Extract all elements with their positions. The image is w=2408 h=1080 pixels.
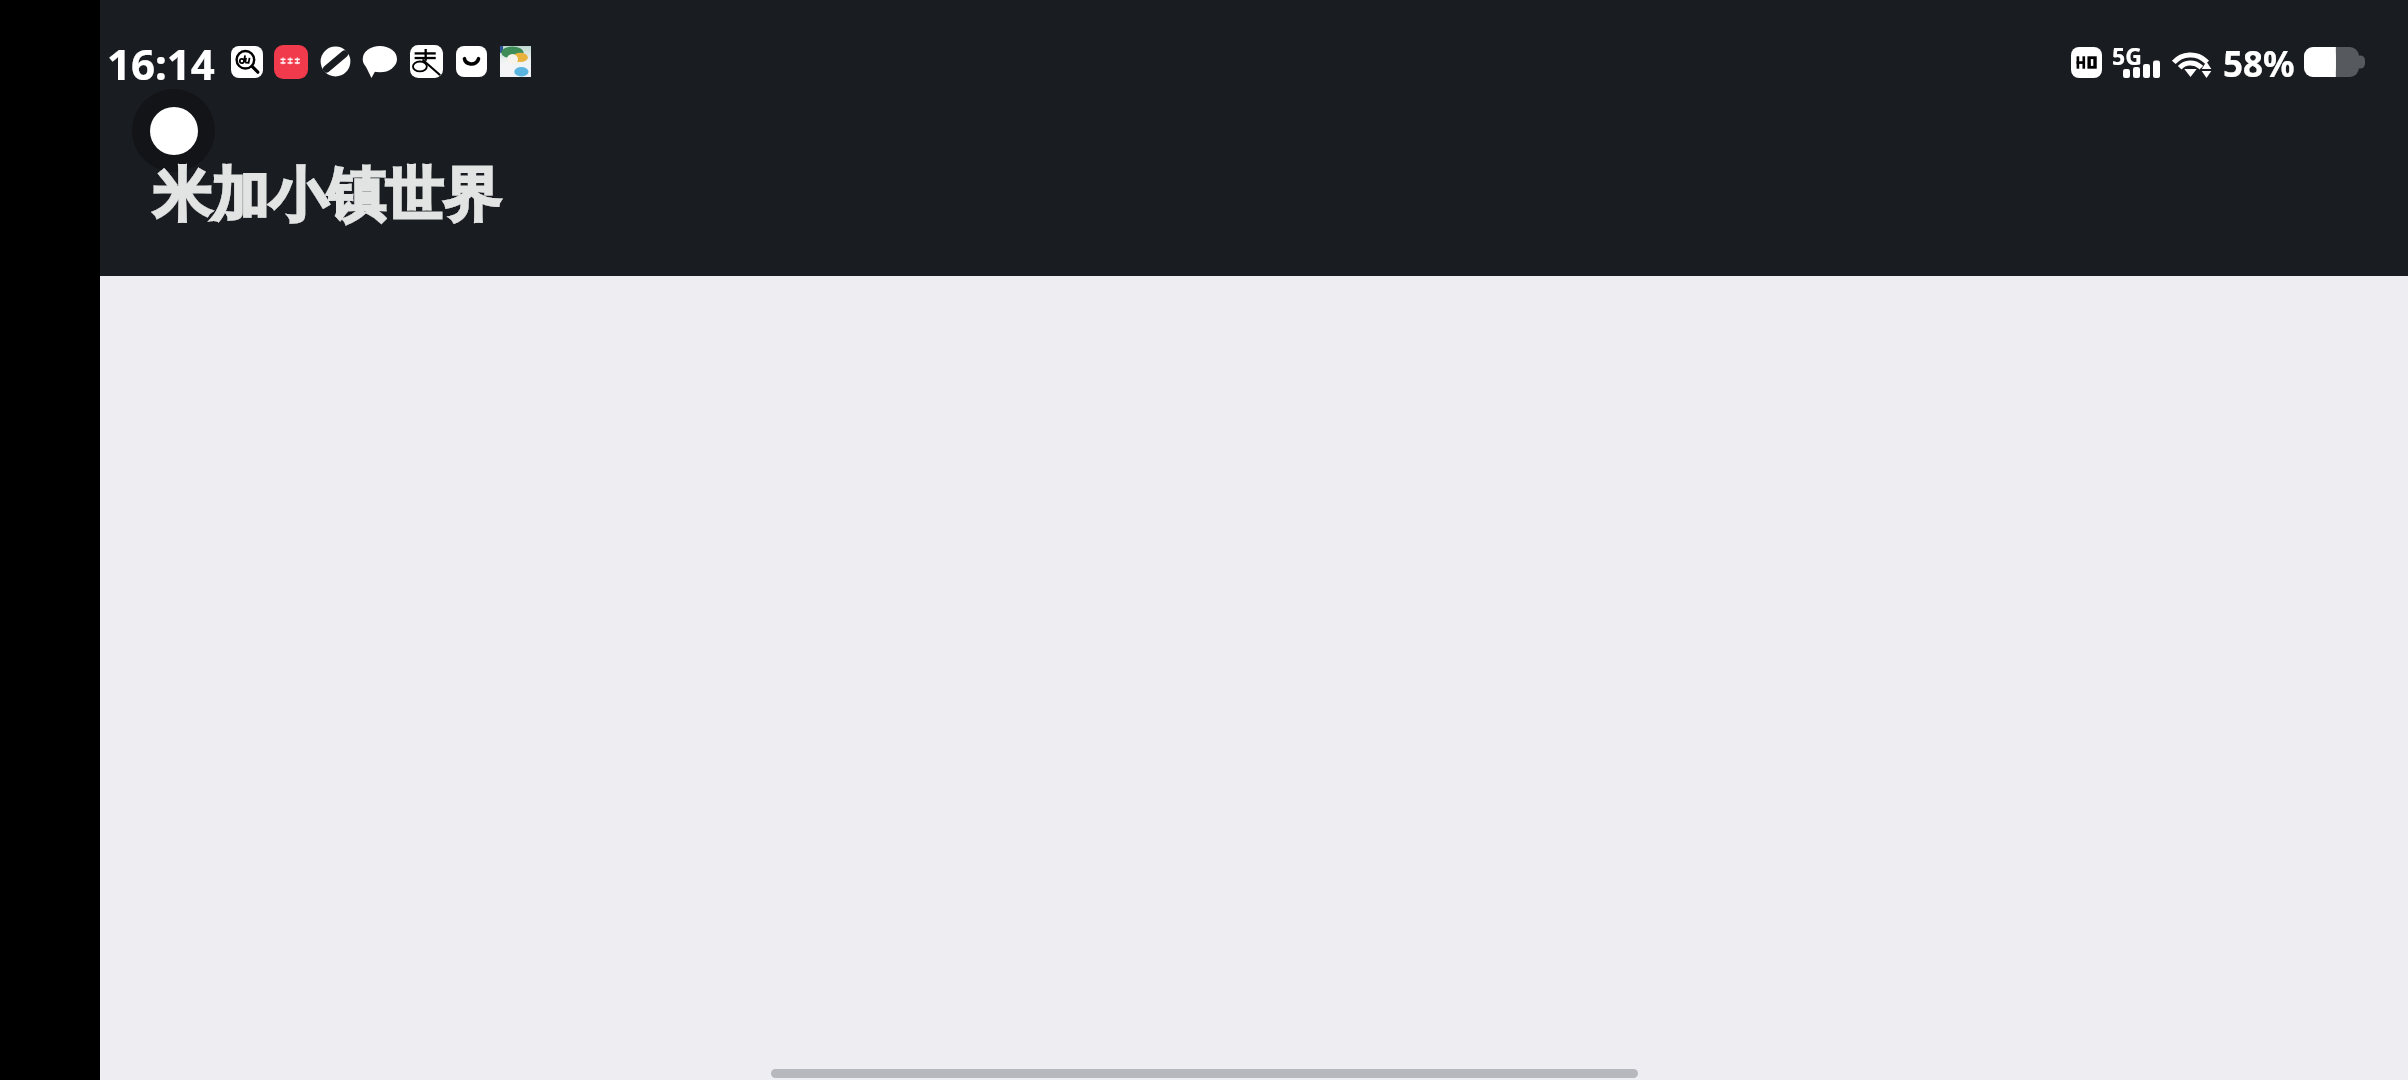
staticText: 5G: [2112, 40, 2142, 71]
button[interactable]: 米加小镇世界: [153, 159, 501, 232]
other: HD, 5G, Wi-Fi, battery 58%: [2071, 47, 2365, 95]
button[interactable]: App icon: [132, 89, 215, 172]
staticText: 16:14: [107, 35, 215, 92]
staticText: 58%: [2223, 40, 2295, 88]
